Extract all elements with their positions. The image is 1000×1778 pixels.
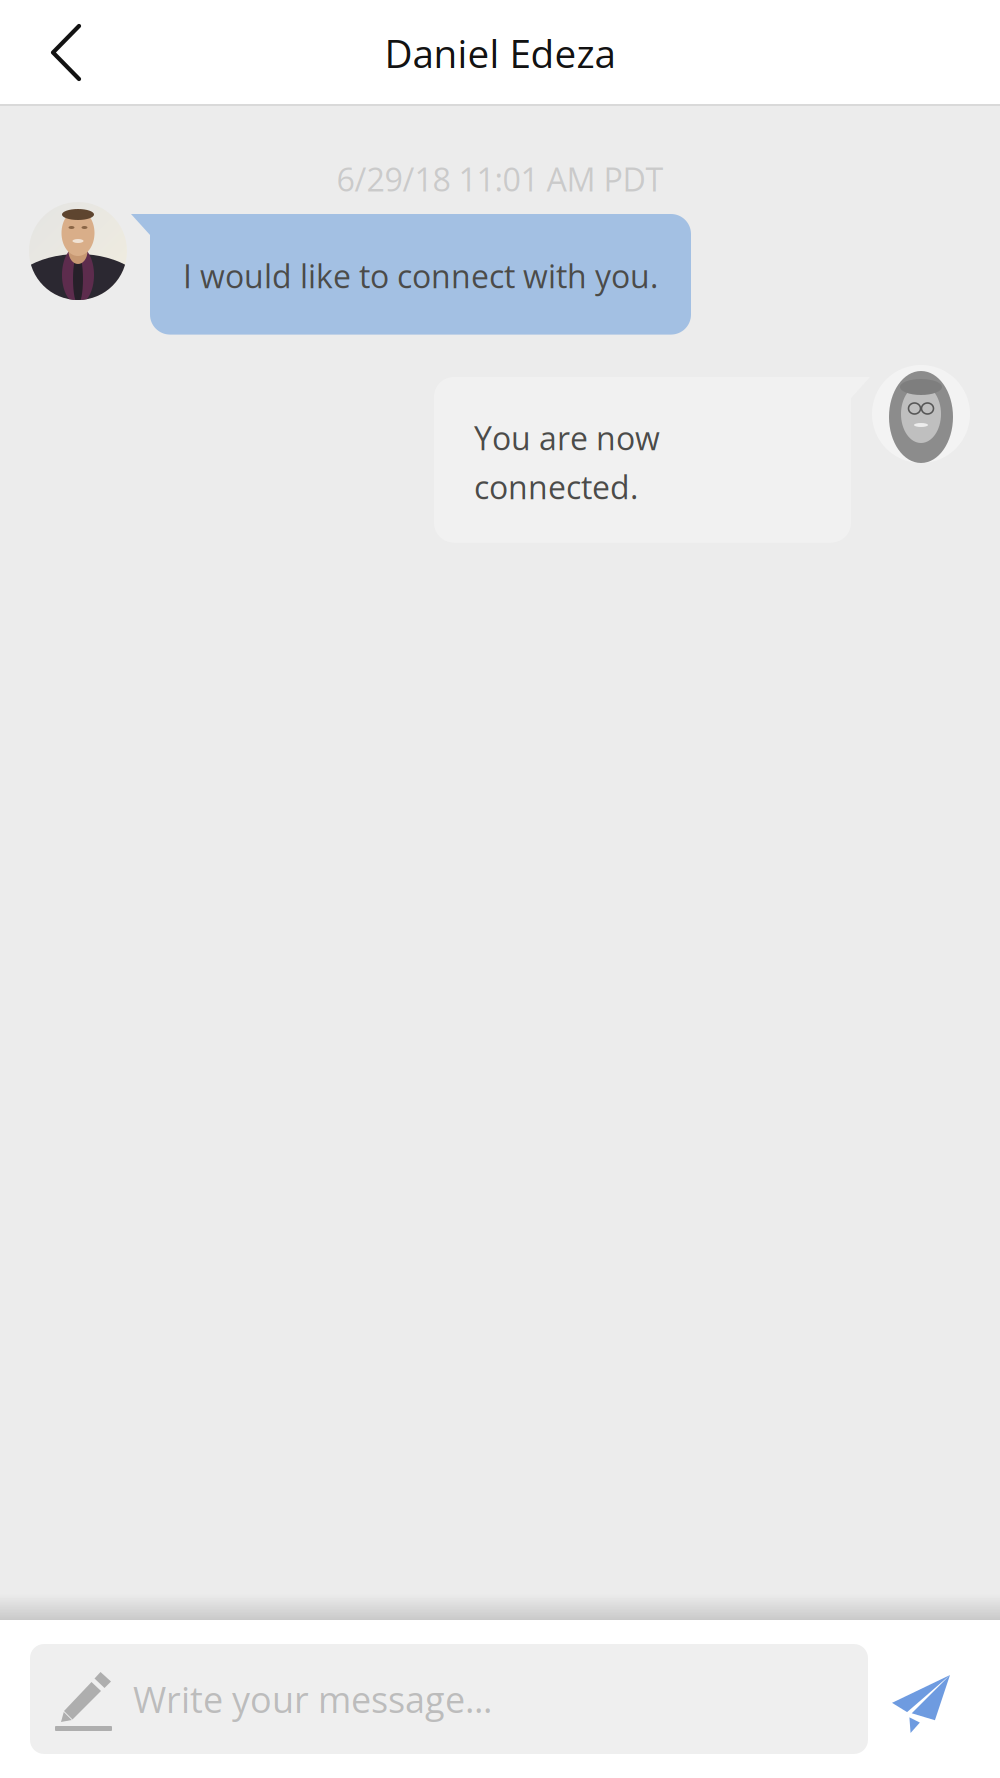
button[interactable]: Write your message... (30, 1644, 868, 1754)
staticText: Write your message... (133, 1674, 492, 1723)
button[interactable]: Send (870, 1649, 978, 1759)
button[interactable]: Back (0, 0, 124, 106)
staticText: I would like to connect with you. (183, 254, 658, 298)
staticText: 6/29/18 11:01 AM PDT (336, 157, 663, 201)
staticText: You are now connected. (474, 416, 660, 509)
staticText: Daniel Edeza (384, 27, 615, 79)
